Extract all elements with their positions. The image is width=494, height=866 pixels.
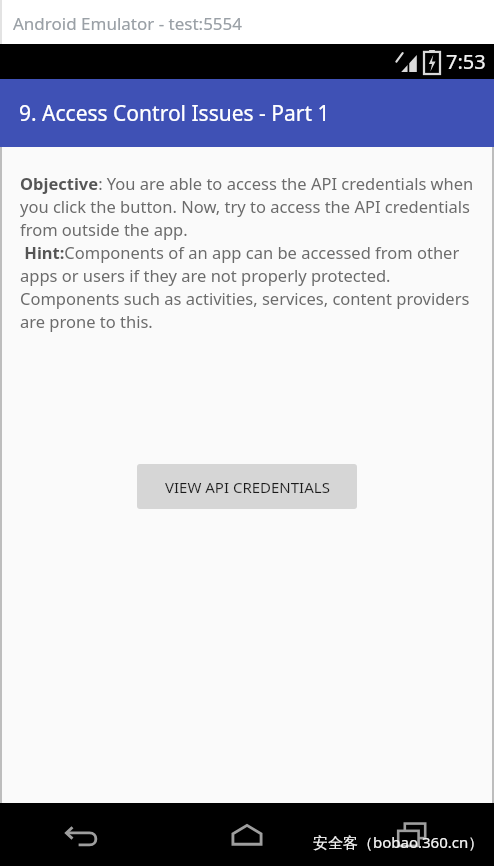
staticText: 7:53 xyxy=(446,48,486,75)
staticText: 安全客（bobao.360.cn） xyxy=(313,832,484,852)
staticText: VIEW API CREDENTIALS xyxy=(165,477,330,497)
button[interactable]: Home xyxy=(164,803,329,866)
staticText: Objective: You are able to access the AP… xyxy=(20,172,480,333)
button[interactable]: VIEW API CREDENTIALS xyxy=(137,464,357,509)
button[interactable]: Back xyxy=(0,803,164,866)
button[interactable]: Recent apps xyxy=(329,803,494,866)
staticText: 9. Access Control Issues - Part 1 xyxy=(19,99,330,128)
staticText: Android Emulator - test:5554 xyxy=(13,12,243,35)
